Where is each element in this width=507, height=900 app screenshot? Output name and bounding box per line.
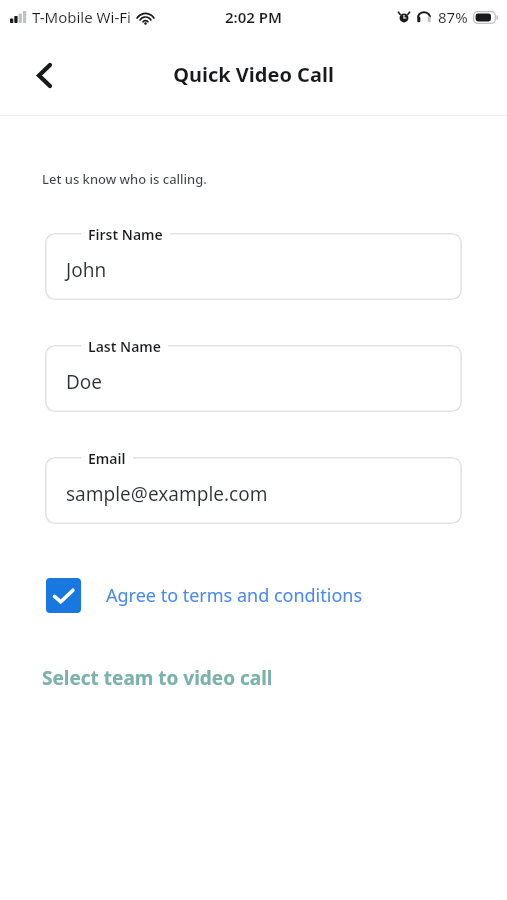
staticText: Agree to terms and conditions — [106, 583, 363, 608]
staticText: Email — [88, 449, 126, 468]
button[interactable]: Back — [22, 53, 66, 97]
staticText: sample@example.com — [66, 481, 268, 507]
staticText: First Name — [88, 225, 163, 244]
button[interactable]: Select team to video call — [42, 665, 273, 691]
staticText: Last Name — [88, 337, 161, 356]
staticText: Let us know who is calling. — [42, 170, 207, 188]
button[interactable]: John — [45, 233, 462, 300]
button[interactable]: Doe — [45, 345, 462, 412]
staticText: 87% — [438, 7, 468, 27]
staticText: T-Mobile Wi-Fi — [32, 7, 131, 27]
staticText: John — [66, 257, 107, 283]
button[interactable]: sample@example.com — [45, 457, 462, 524]
button[interactable]: Agree to terms and conditions — [38, 570, 363, 621]
staticText: 2:02 PM — [225, 7, 282, 27]
staticText: Quick Video Call — [173, 61, 334, 88]
staticText: Doe — [66, 369, 103, 395]
